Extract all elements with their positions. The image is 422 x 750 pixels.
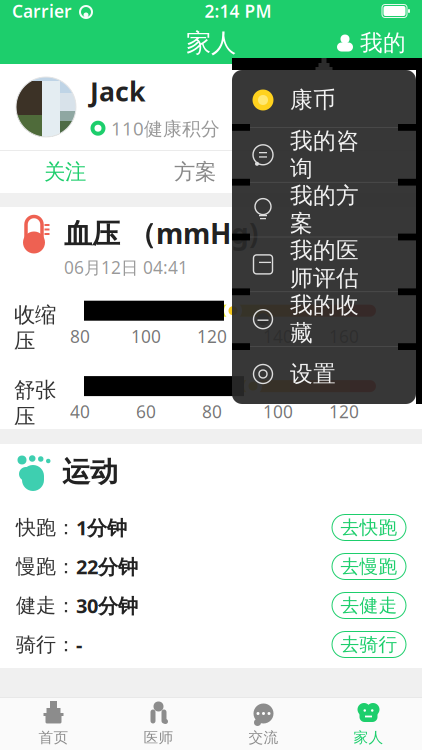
staticText: 家人 (353, 728, 383, 746)
button[interactable]: 交流 (211, 699, 316, 749)
button[interactable]: 关注 (0, 151, 130, 193)
staticText: 康币 (290, 86, 336, 114)
staticText: 22分钟 (76, 553, 138, 580)
staticText: 我的收藏 (290, 291, 359, 347)
staticText: 家人 (186, 27, 236, 58)
staticText: 首页 (38, 728, 68, 746)
staticText: 1分钟 (76, 514, 127, 541)
staticText: - (76, 631, 82, 658)
staticText: 我的医师评估 (290, 237, 359, 292)
staticText: 80 (70, 325, 90, 348)
staticText: 60 (136, 400, 156, 423)
staticText: 血压 （mmHg) (64, 214, 258, 252)
staticText: 医师 (143, 728, 173, 746)
staticText: 06月12日 04:41 (64, 256, 188, 279)
staticText: 40 (70, 400, 90, 423)
button[interactable]: 家人 (316, 699, 421, 749)
button[interactable]: 医师 (106, 699, 211, 749)
staticText: 关注 (44, 159, 86, 185)
button[interactable]: 我的 (326, 23, 416, 63)
staticText: 120 (329, 400, 359, 423)
staticText: 100 (131, 325, 161, 348)
staticText: 方案 (174, 159, 216, 185)
button[interactable]: 我的咨询 (232, 131, 416, 179)
button[interactable]: 去快跑 (332, 514, 406, 540)
staticText: 舒张压 (14, 377, 56, 429)
button[interactable]: 首页 (1, 699, 106, 749)
staticText: 去骑行 (340, 633, 397, 656)
staticText: 骑行： (16, 632, 76, 657)
staticText: 100 (263, 400, 293, 423)
button[interactable]: 我的方案 (232, 186, 416, 234)
button[interactable]: 我的医师评估 (232, 240, 416, 288)
button[interactable]: 方案 (130, 151, 260, 193)
staticText: 140 (263, 325, 293, 348)
staticText: 110健康积分 (111, 116, 220, 141)
staticText: Carrier (12, 0, 72, 22)
staticText: 去慢跑 (340, 555, 397, 578)
staticText: 我的咨询 (290, 127, 359, 183)
staticText: 80 (202, 400, 222, 423)
staticText: 健走： (16, 593, 76, 618)
staticText: 交流 (248, 728, 278, 746)
staticText: 160 (329, 325, 359, 348)
staticText: 收缩压 (14, 302, 56, 354)
staticText: 快跑： (16, 515, 76, 540)
staticText: 我的方案 (290, 182, 359, 237)
staticText: 设置 (290, 360, 336, 388)
staticText: 我的 (360, 29, 406, 57)
staticText: 2:14 PM (204, 0, 271, 22)
button[interactable]: 康币 (232, 76, 416, 124)
button[interactable]: 我的收藏 (232, 295, 416, 343)
staticText: 30分钟 (76, 592, 138, 619)
staticText: 慢跑： (16, 554, 76, 579)
button[interactable]: 设置 (232, 350, 416, 398)
staticText: 去健走 (340, 594, 397, 617)
button[interactable]: 去骑行 (332, 631, 406, 657)
staticText: 运动 (62, 455, 118, 489)
button[interactable]: 去慢跑 (332, 553, 406, 579)
staticText: Jack (90, 73, 146, 109)
staticText: 120 (197, 325, 227, 348)
staticText: 去快跑 (340, 516, 397, 539)
button[interactable]: 去健走 (332, 592, 406, 618)
